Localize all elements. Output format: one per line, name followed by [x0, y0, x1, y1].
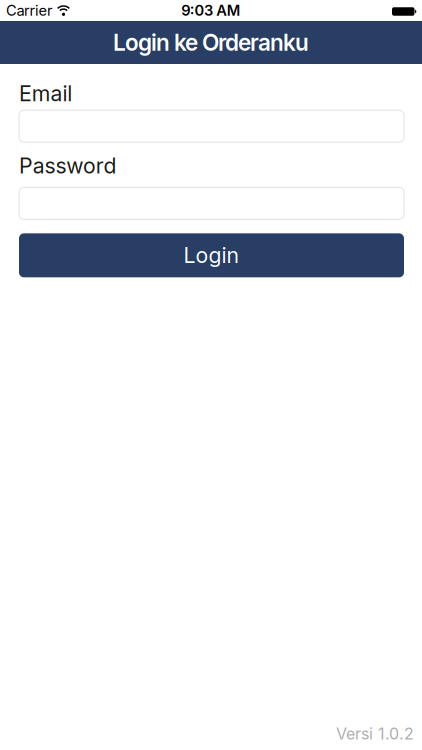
button[interactable]: Login — [19, 233, 404, 277]
staticText: Versi 1.0.2 — [336, 724, 414, 743]
staticText: Password — [19, 153, 117, 178]
button[interactable]: Email — [19, 110, 404, 142]
staticText: Carrier — [6, 2, 53, 19]
button[interactable]: Password — [19, 187, 404, 219]
staticText: Login — [183, 243, 239, 268]
staticText: Login ke Orderanku — [113, 29, 309, 56]
staticText: 9:03 AM — [181, 2, 241, 19]
staticText: Email — [19, 81, 72, 106]
